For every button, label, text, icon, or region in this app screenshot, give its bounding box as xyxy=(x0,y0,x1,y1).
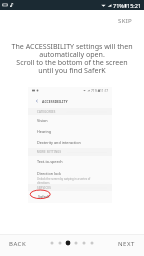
button[interactable]: SKIP xyxy=(115,13,136,27)
button[interactable]: Vision xyxy=(28,115,112,126)
staticText: Hearing xyxy=(37,129,52,134)
button[interactable]: Dexterity and interaction xyxy=(28,137,112,148)
button[interactable]: Back xyxy=(35,99,39,103)
staticText: 11:17 xyxy=(100,89,109,93)
staticText: SaferK xyxy=(38,194,50,199)
staticText: Dexterity and interaction xyxy=(37,140,81,145)
staticText: 71% xyxy=(113,2,124,9)
staticText: ACCESSIBILITY xyxy=(42,99,68,104)
staticText: Text-to-speech xyxy=(37,159,63,164)
staticText: SKIP xyxy=(118,16,133,24)
staticText: Vision xyxy=(37,118,48,123)
staticText: Direction lock xyxy=(37,171,62,176)
staticText: Scroll to the bottom of the screen xyxy=(0,57,144,67)
staticText: until you find SaferK xyxy=(0,65,144,75)
staticText: CATEGORIES xyxy=(37,110,56,114)
staticText: Unlock the screen by swiping in a series… xyxy=(37,177,91,184)
button[interactable]: Hearing xyxy=(28,126,112,137)
button[interactable]: NEXT xyxy=(112,235,144,255)
staticText: SERVICES xyxy=(37,186,51,190)
staticText: BACK xyxy=(9,240,27,248)
staticText: 15:21 xyxy=(127,2,142,9)
button[interactable]: Text-to-speech xyxy=(28,156,112,166)
staticText: 71% xyxy=(91,89,98,93)
button[interactable]: SaferK xyxy=(28,191,112,203)
staticText: The ACCESSIBILITY settings will then xyxy=(0,41,144,51)
staticText: NEXT xyxy=(118,240,135,248)
button[interactable]: BACK xyxy=(0,235,33,255)
staticText: MORE SETTINGS xyxy=(37,150,62,154)
staticText: automatically open. xyxy=(0,49,144,59)
button[interactable]: Direction lock xyxy=(28,166,112,184)
